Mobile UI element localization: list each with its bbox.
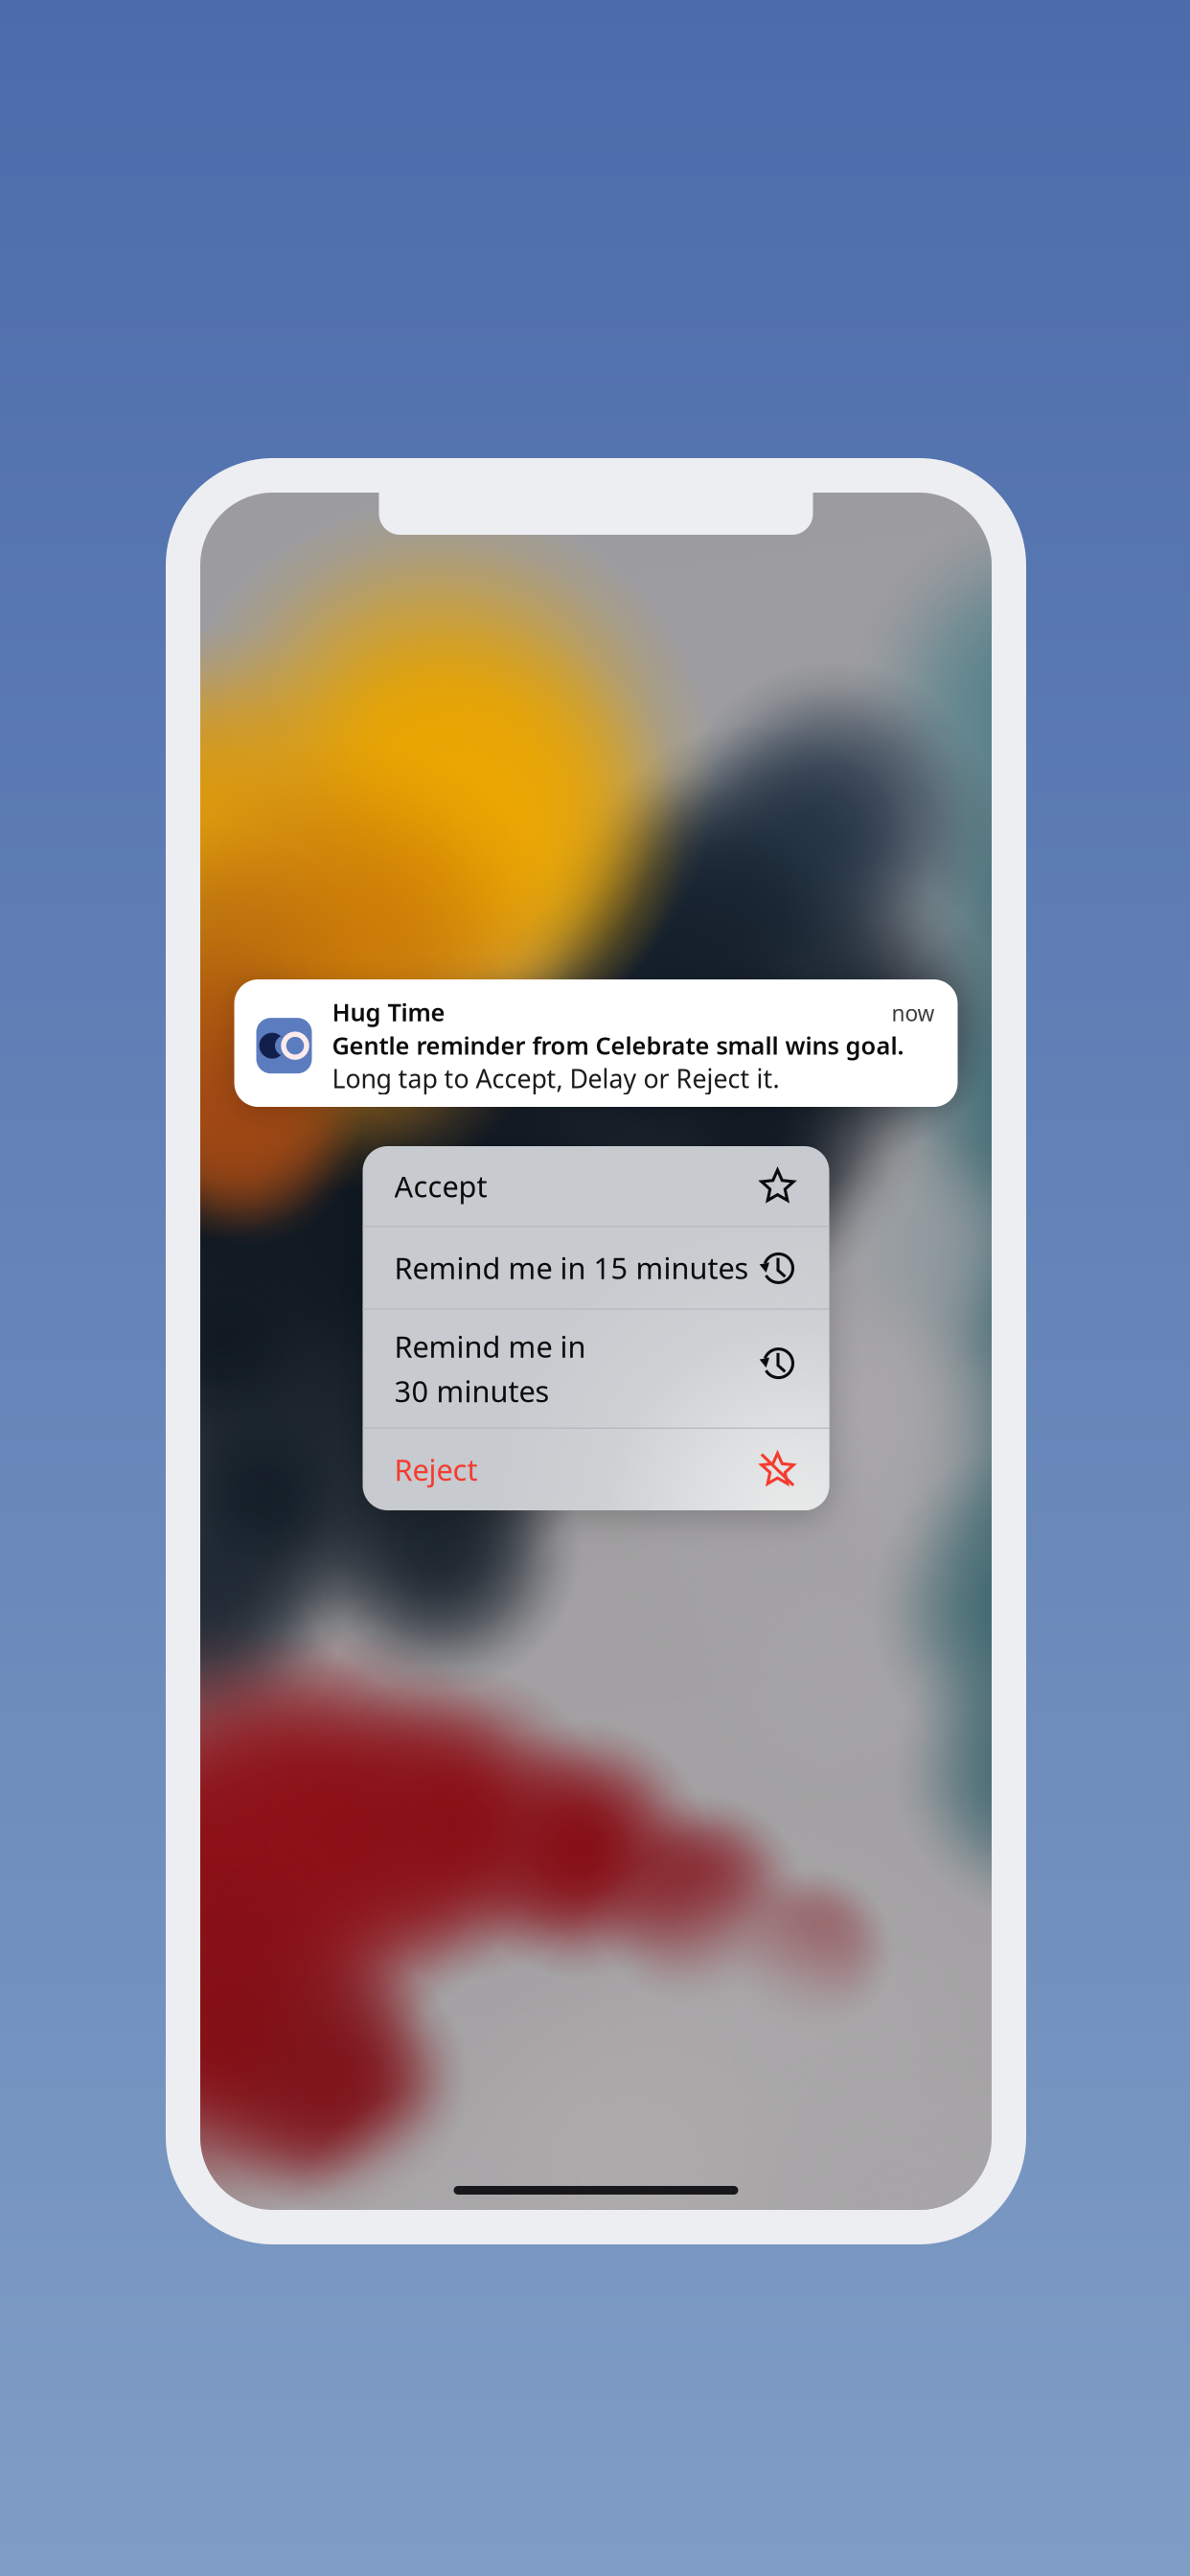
staticText: Reject: [394, 1450, 478, 1489]
button[interactable]: Reject: [363, 1429, 829, 1510]
staticText: Long tap to Accept, Delay or Reject it.: [332, 1061, 779, 1095]
staticText: 30 minutes: [394, 1371, 549, 1410]
button[interactable]: Remind me in: [363, 1310, 829, 1428]
staticText: Accept: [394, 1167, 487, 1206]
button[interactable]: Hug Time: [234, 979, 958, 1107]
button[interactable]: Remind me in 15 minutes: [363, 1227, 829, 1309]
staticText: Remind me in 15 minutes: [394, 1248, 749, 1287]
staticText: Hug Time: [332, 996, 445, 1028]
staticText: now: [892, 999, 935, 1027]
staticText: Gentle reminder from Celebrate small win…: [332, 1029, 904, 1061]
staticText: Remind me in: [394, 1327, 586, 1366]
button[interactable]: Accept: [363, 1146, 829, 1226]
button[interactable]: Home: [454, 2178, 738, 2202]
